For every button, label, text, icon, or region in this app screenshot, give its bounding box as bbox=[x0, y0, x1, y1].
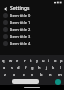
staticText: q bbox=[2, 58, 5, 63]
button[interactable]: Send bbox=[55, 79, 61, 85]
button[interactable]: q bbox=[0, 56, 7, 64]
staticText: y bbox=[36, 58, 39, 63]
staticText: p bbox=[60, 58, 63, 63]
button[interactable]: j bbox=[43, 64, 50, 71]
button[interactable]: Item title 4 bbox=[0, 40, 64, 47]
button[interactable]: Item title 3 bbox=[0, 33, 64, 40]
button[interactable]: Item title 1 bbox=[0, 19, 64, 26]
staticText: v bbox=[31, 72, 34, 77]
staticText: b bbox=[40, 72, 43, 77]
button[interactable]: n bbox=[46, 71, 55, 78]
staticText: x bbox=[13, 72, 16, 77]
staticText: w bbox=[9, 58, 13, 63]
staticText: i bbox=[48, 58, 50, 63]
button[interactable]: a bbox=[0, 64, 8, 71]
staticText: e bbox=[16, 58, 19, 63]
button[interactable]: x bbox=[10, 71, 19, 78]
button[interactable]: b bbox=[37, 71, 46, 78]
staticText: z bbox=[4, 72, 6, 77]
button[interactable]: e bbox=[14, 56, 21, 64]
button[interactable] bbox=[12, 79, 39, 84]
staticText: Item title 0 bbox=[10, 13, 31, 18]
staticText: f bbox=[25, 65, 27, 70]
staticText: k bbox=[52, 65, 55, 70]
staticText: g bbox=[31, 65, 34, 70]
staticText: h bbox=[38, 65, 41, 70]
staticText: Settings bbox=[10, 5, 30, 12]
staticText: u bbox=[42, 58, 45, 63]
button[interactable]: h bbox=[36, 64, 43, 71]
staticText: a bbox=[3, 65, 6, 70]
button[interactable]: v bbox=[28, 71, 37, 78]
button[interactable]: u bbox=[40, 56, 46, 64]
button[interactable]: g bbox=[29, 64, 36, 71]
staticText: t bbox=[30, 58, 32, 63]
button[interactable]: o bbox=[52, 56, 58, 64]
button[interactable]: l bbox=[57, 64, 64, 71]
staticText: s bbox=[11, 65, 13, 70]
button[interactable]: k bbox=[50, 64, 57, 71]
staticText: d bbox=[17, 65, 20, 70]
staticText: Item title 3 bbox=[10, 34, 31, 39]
staticText: j bbox=[46, 65, 48, 70]
staticText: l bbox=[60, 65, 62, 70]
button[interactable]: t bbox=[28, 56, 34, 64]
button[interactable]: i bbox=[46, 56, 52, 64]
button[interactable]: y bbox=[34, 56, 40, 64]
staticText: m bbox=[58, 72, 62, 77]
button[interactable]: z bbox=[0, 71, 10, 78]
staticText: o bbox=[54, 58, 57, 63]
staticText: c bbox=[23, 72, 25, 77]
button[interactable]: c bbox=[19, 71, 28, 78]
button[interactable]: Item title 0 bbox=[0, 12, 64, 19]
staticText: n bbox=[49, 72, 52, 77]
button[interactable]: p bbox=[58, 56, 64, 64]
staticText: Item title 2 bbox=[10, 27, 31, 32]
staticText: r bbox=[24, 58, 26, 63]
button[interactable]: r bbox=[21, 56, 28, 64]
button[interactable]: d bbox=[15, 64, 22, 71]
staticText: Item title 1 bbox=[10, 20, 31, 25]
button[interactable]: Back bbox=[2, 5, 9, 12]
button[interactable]: Item title 2 bbox=[0, 26, 64, 33]
button[interactable]: m bbox=[55, 71, 64, 78]
button[interactable]: w bbox=[7, 56, 14, 64]
button[interactable]: s bbox=[8, 64, 15, 71]
button[interactable]: f bbox=[22, 64, 29, 71]
staticText: Item title 4 bbox=[10, 41, 31, 46]
